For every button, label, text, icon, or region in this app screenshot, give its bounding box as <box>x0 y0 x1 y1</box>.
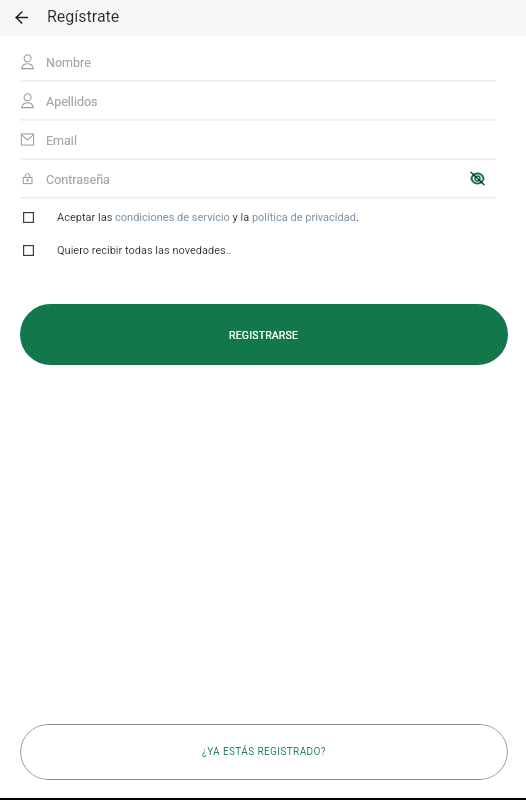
button[interactable]: Back <box>5 4 37 30</box>
staticText: ¿YA ESTÁS REGISTRADO? <box>202 746 326 758</box>
staticText: Aceptar las condiciones de servicio y la… <box>57 211 359 224</box>
staticText: Nombre <box>46 55 91 70</box>
button[interactable]: ¿YA ESTÁS REGISTRADO? <box>20 724 508 780</box>
button[interactable]: Nombre <box>0 41 526 81</box>
button[interactable]: Show password <box>466 167 489 190</box>
button[interactable]: Quiero recibir todas las novedades.. <box>0 233 526 266</box>
button[interactable]: Apellidos <box>0 80 526 120</box>
staticText: Email <box>46 133 77 148</box>
staticText: Contraseña <box>46 172 110 187</box>
staticText: Apellidos <box>46 94 98 109</box>
button[interactable]: Email <box>0 119 526 159</box>
button[interactable]: Contraseña <box>0 158 526 198</box>
staticText: Regístrate <box>47 7 120 26</box>
button[interactable]: REGISTRARSE <box>20 304 508 365</box>
staticText: Quiero recibir todas las novedades.. <box>57 244 232 257</box>
button[interactable]: Aceptar las condiciones de servicio y la… <box>0 200 526 233</box>
staticText: REGISTRARSE <box>229 329 299 341</box>
